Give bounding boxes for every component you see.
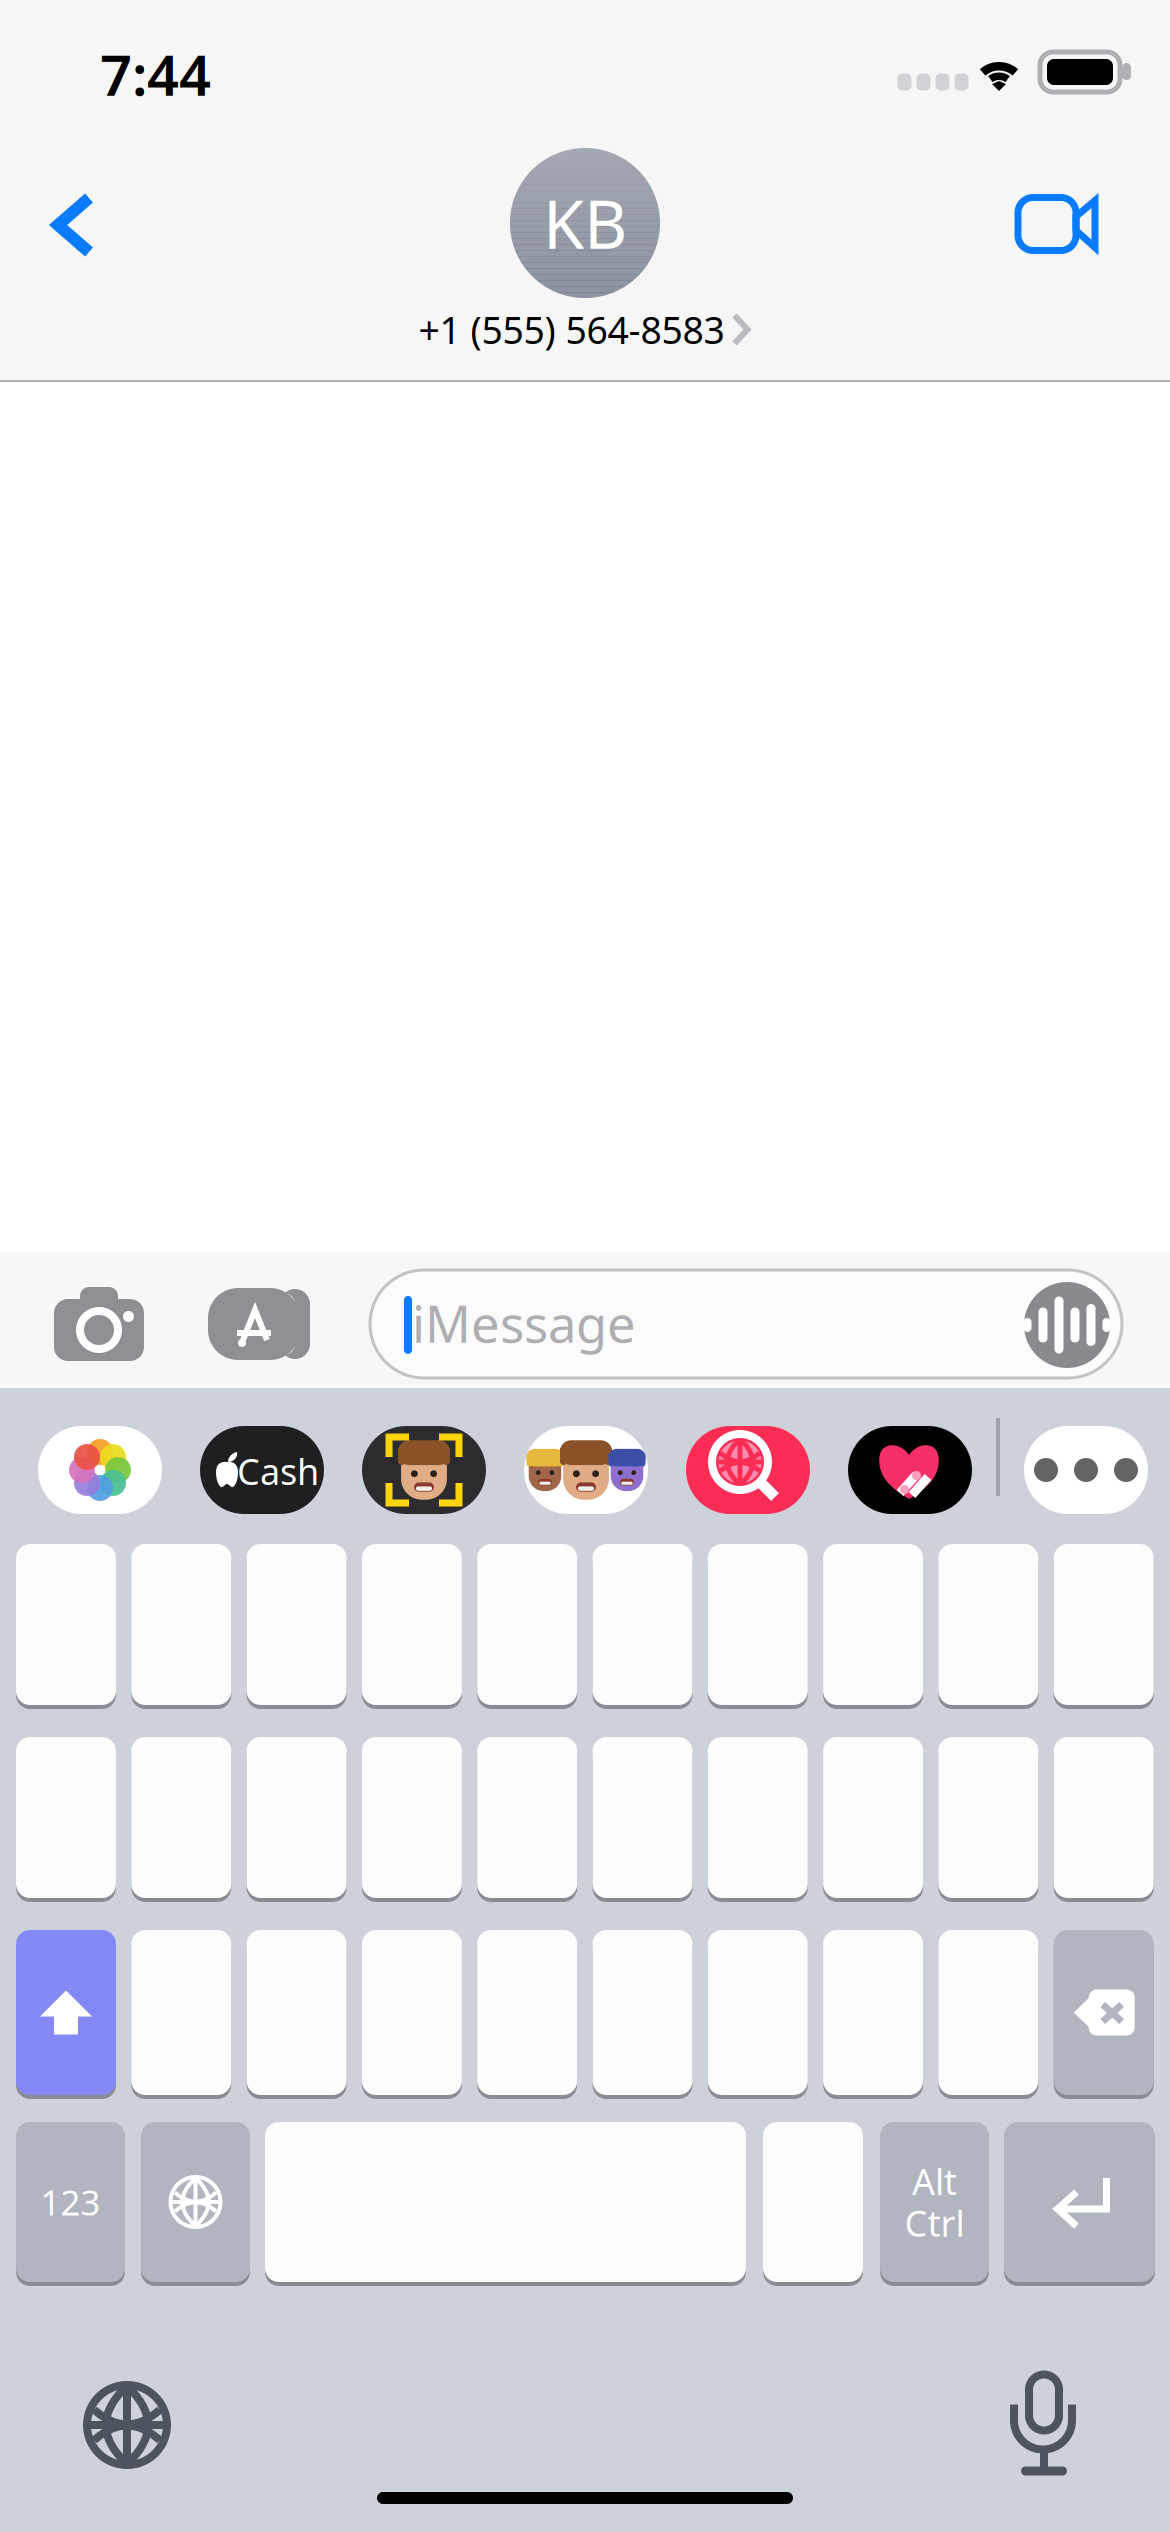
button[interactable]: Key — [0, 0, 1170, 2532]
button[interactable]: iMessage apps — [0, 0, 1170, 2532]
staticText: Ctrl — [904, 2199, 964, 2247]
button[interactable]: Numbers — [0, 0, 1170, 2532]
staticText: Cash — [237, 1447, 319, 1495]
button[interactable]: Memoji — [0, 0, 1170, 2532]
button[interactable]: Key — [0, 0, 1170, 2532]
button[interactable]: Key — [0, 0, 1170, 2532]
button[interactable]: Camera — [0, 0, 1170, 2532]
button[interactable]: Images — [0, 0, 1170, 2532]
button[interactable]: Key — [0, 0, 1170, 2532]
button[interactable]: Key — [0, 0, 1170, 2532]
button[interactable]: Key — [0, 0, 1170, 2532]
button[interactable]: Key — [0, 0, 1170, 2532]
button[interactable]: Alt Control — [0, 0, 1170, 2532]
button[interactable]: FaceTime video call — [0, 0, 1170, 2532]
button[interactable]: Key — [0, 0, 1170, 2532]
button[interactable]: More apps — [0, 0, 1170, 2532]
button[interactable]: Key — [0, 0, 1170, 2532]
button[interactable]: Photos — [0, 0, 1170, 2532]
button[interactable]: Next keyboard — [0, 0, 1170, 2532]
staticText: 123 — [40, 2179, 100, 2225]
staticText: Alt — [912, 2157, 957, 2205]
button[interactable]: Key — [0, 0, 1170, 2532]
button[interactable]: Key — [0, 0, 1170, 2532]
button[interactable]: Key — [0, 0, 1170, 2532]
button[interactable]: Key — [0, 0, 1170, 2532]
button[interactable]: Key — [0, 0, 1170, 2532]
button[interactable]: Back — [0, 0, 1170, 2532]
button[interactable]: Key — [0, 0, 1170, 2532]
button[interactable]: Key — [0, 0, 1170, 2532]
button[interactable]: KB — [0, 0, 1170, 2532]
button[interactable]: Key — [0, 0, 1170, 2532]
button[interactable]: Emoji keyboard — [0, 0, 1170, 2532]
button[interactable]: Record audio message — [0, 0, 1170, 2532]
button[interactable]: Key — [0, 0, 1170, 2532]
button[interactable]: Key — [0, 0, 1170, 2532]
button[interactable]: Shift — [0, 0, 1170, 2532]
button[interactable]: Key — [0, 0, 1170, 2532]
button[interactable]: Apple Cash — [0, 0, 1170, 2532]
button[interactable]: Key — [0, 0, 1170, 2532]
staticText: 7:44 — [100, 37, 211, 111]
button[interactable]: Stickers — [0, 0, 1170, 2532]
button[interactable]: Key — [0, 0, 1170, 2532]
button[interactable]: Key — [0, 0, 1170, 2532]
button[interactable]: Key — [0, 0, 1170, 2532]
button[interactable]: Key — [0, 0, 1170, 2532]
button[interactable]: Dictation — [0, 0, 1170, 2532]
button[interactable]: Delete — [0, 0, 1170, 2532]
button[interactable]: Key — [0, 0, 1170, 2532]
staticText: +1 (555) 564-8583 — [418, 305, 724, 354]
button[interactable]: Key — [0, 0, 1170, 2532]
button[interactable]: Key — [0, 0, 1170, 2532]
button[interactable]: Key — [0, 0, 1170, 2532]
button[interactable]: Return — [0, 0, 1170, 2532]
staticText: iMessage — [412, 1289, 636, 1357]
staticText: KB — [543, 179, 627, 267]
button[interactable]: Fitness — [0, 0, 1170, 2532]
button[interactable]: Key — [0, 0, 1170, 2532]
